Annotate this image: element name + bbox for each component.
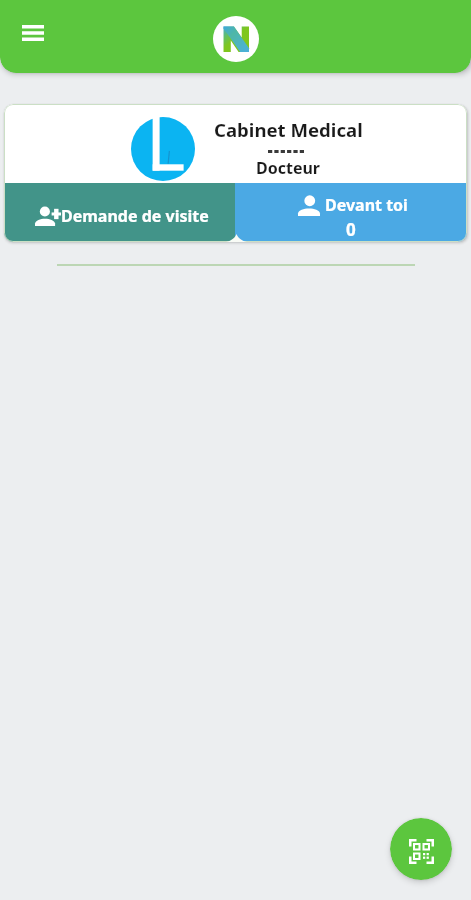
staticText: Docteur: [256, 157, 321, 179]
button[interactable]: Menu: [12, 12, 54, 54]
staticText: Devant toi: [325, 194, 408, 216]
staticText: Demande de visite: [61, 205, 209, 227]
button[interactable]: Scan QR code: [390, 818, 452, 880]
button[interactable]: App logo: [213, 16, 259, 62]
button[interactable]: Demande de visite: [4, 183, 235, 242]
staticText: 0: [346, 218, 356, 241]
staticText: Cabinet Medical: [214, 117, 363, 142]
button[interactable]: Devant toi: [235, 183, 467, 242]
